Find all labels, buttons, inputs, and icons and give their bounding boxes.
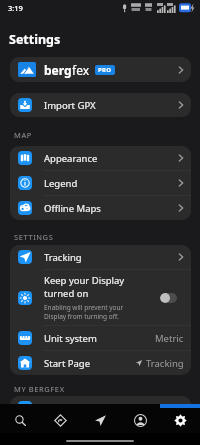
- button[interactable]: Search: [0, 404, 40, 433]
- button[interactable]: Discover: [40, 404, 80, 433]
- staticText: Keep your Display: [44, 274, 125, 287]
- button[interactable]: Navigate: [80, 404, 120, 433]
- button[interactable]: Import GPX: [10, 93, 191, 117]
- staticText: SETTINGS: [14, 232, 54, 242]
- button[interactable]: Legend: [10, 171, 191, 195]
- staticText: Display from turning off.: [44, 312, 119, 321]
- staticText: Metric: [155, 332, 184, 345]
- button[interactable]: Settings: [160, 404, 200, 433]
- button[interactable]: Start Page: [10, 351, 191, 375]
- staticText: Legend: [44, 177, 78, 190]
- staticText: 3:19: [8, 3, 23, 13]
- button[interactable]: Offline Maps: [10, 196, 191, 220]
- button[interactable]: Profile: [120, 404, 160, 433]
- staticText: Unit system: [44, 332, 97, 345]
- staticText: turned on: [44, 287, 89, 300]
- staticText: My Tours: [44, 402, 85, 415]
- staticText: Import GPX: [44, 99, 96, 112]
- button[interactable]: My Tours: [10, 396, 191, 420]
- button[interactable]: [160, 293, 177, 303]
- staticText: PRO: [98, 66, 112, 74]
- staticText: Settings: [9, 31, 61, 48]
- staticText: Appearance: [44, 152, 98, 165]
- staticText: berg: [44, 62, 72, 78]
- staticText: Enabling will prevent your: [44, 303, 124, 312]
- staticText: MY BERGFEX: [14, 384, 65, 394]
- button[interactable]: Appearance: [10, 146, 191, 170]
- staticText: Start Page: [44, 357, 91, 370]
- staticText: fex: [72, 62, 90, 78]
- staticText: Tracking: [146, 357, 184, 370]
- staticText: Tracking: [44, 251, 82, 264]
- staticText: Offline Maps: [44, 202, 101, 215]
- button[interactable]: berg: [10, 57, 191, 82]
- button[interactable]: Unit system: [10, 326, 191, 350]
- button[interactable]: Tracking: [10, 245, 191, 269]
- staticText: MAP: [14, 130, 32, 140]
- button[interactable]: Keep your Display: [10, 270, 191, 325]
